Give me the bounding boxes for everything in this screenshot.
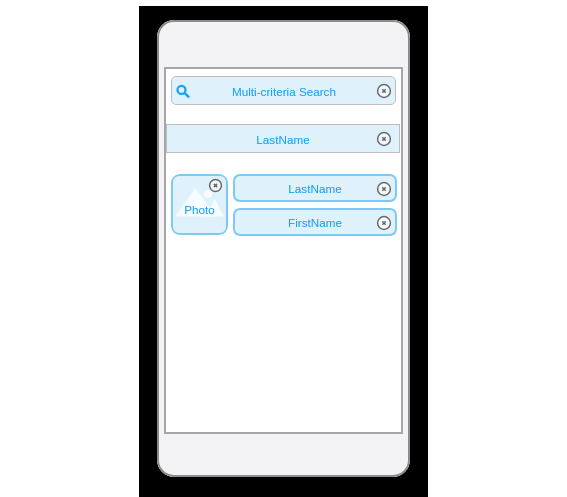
button[interactable]: Clear (376, 131, 392, 147)
button[interactable]: Clear (376, 181, 392, 197)
button[interactable]: Search (173, 81, 193, 101)
staticText: Multi-criteria Search (232, 85, 336, 98)
button[interactable]: Clear (376, 83, 392, 99)
button[interactable]: LastName (166, 124, 400, 153)
staticText: LastName (256, 133, 310, 146)
button[interactable]: Photo (171, 174, 228, 235)
staticText: Photo (184, 203, 215, 216)
staticText: FirstName (288, 216, 342, 229)
button[interactable]: LastName (233, 174, 397, 202)
staticText: LastName (288, 182, 342, 195)
button[interactable]: FirstName (233, 208, 397, 236)
button[interactable]: Clear (376, 215, 392, 231)
button[interactable]: Clear (208, 178, 223, 193)
button[interactable]: Multi-criteria Search (171, 76, 396, 105)
